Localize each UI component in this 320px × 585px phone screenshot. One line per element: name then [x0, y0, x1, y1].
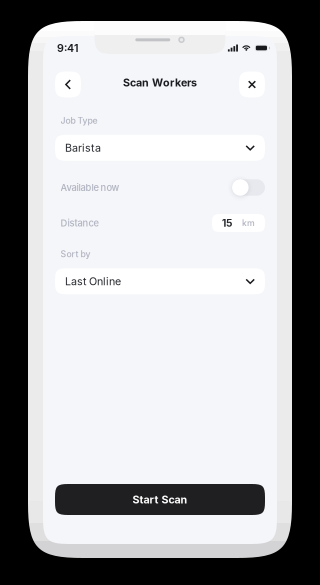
button[interactable]: Start Scan: [55, 484, 265, 515]
staticText: Sort by: [60, 249, 90, 259]
staticText: 15: [222, 217, 232, 229]
staticText: Available now: [60, 182, 119, 193]
staticText: km: [242, 218, 255, 228]
button[interactable]: Available now: [232, 179, 265, 196]
button[interactable]: Last Online: [55, 268, 265, 294]
button[interactable]: Barista: [55, 135, 265, 161]
button[interactable]: Back: [55, 71, 81, 97]
staticText: Distance: [60, 217, 98, 229]
staticText: Start Scan: [132, 493, 187, 506]
staticText: Last Online: [65, 275, 121, 288]
staticText: Barista: [65, 141, 101, 154]
button[interactable]: Close: [239, 71, 265, 97]
staticText: Job Type: [60, 115, 97, 126]
staticText: Scan Workers: [123, 76, 197, 89]
staticText: 9:41: [57, 41, 79, 54]
